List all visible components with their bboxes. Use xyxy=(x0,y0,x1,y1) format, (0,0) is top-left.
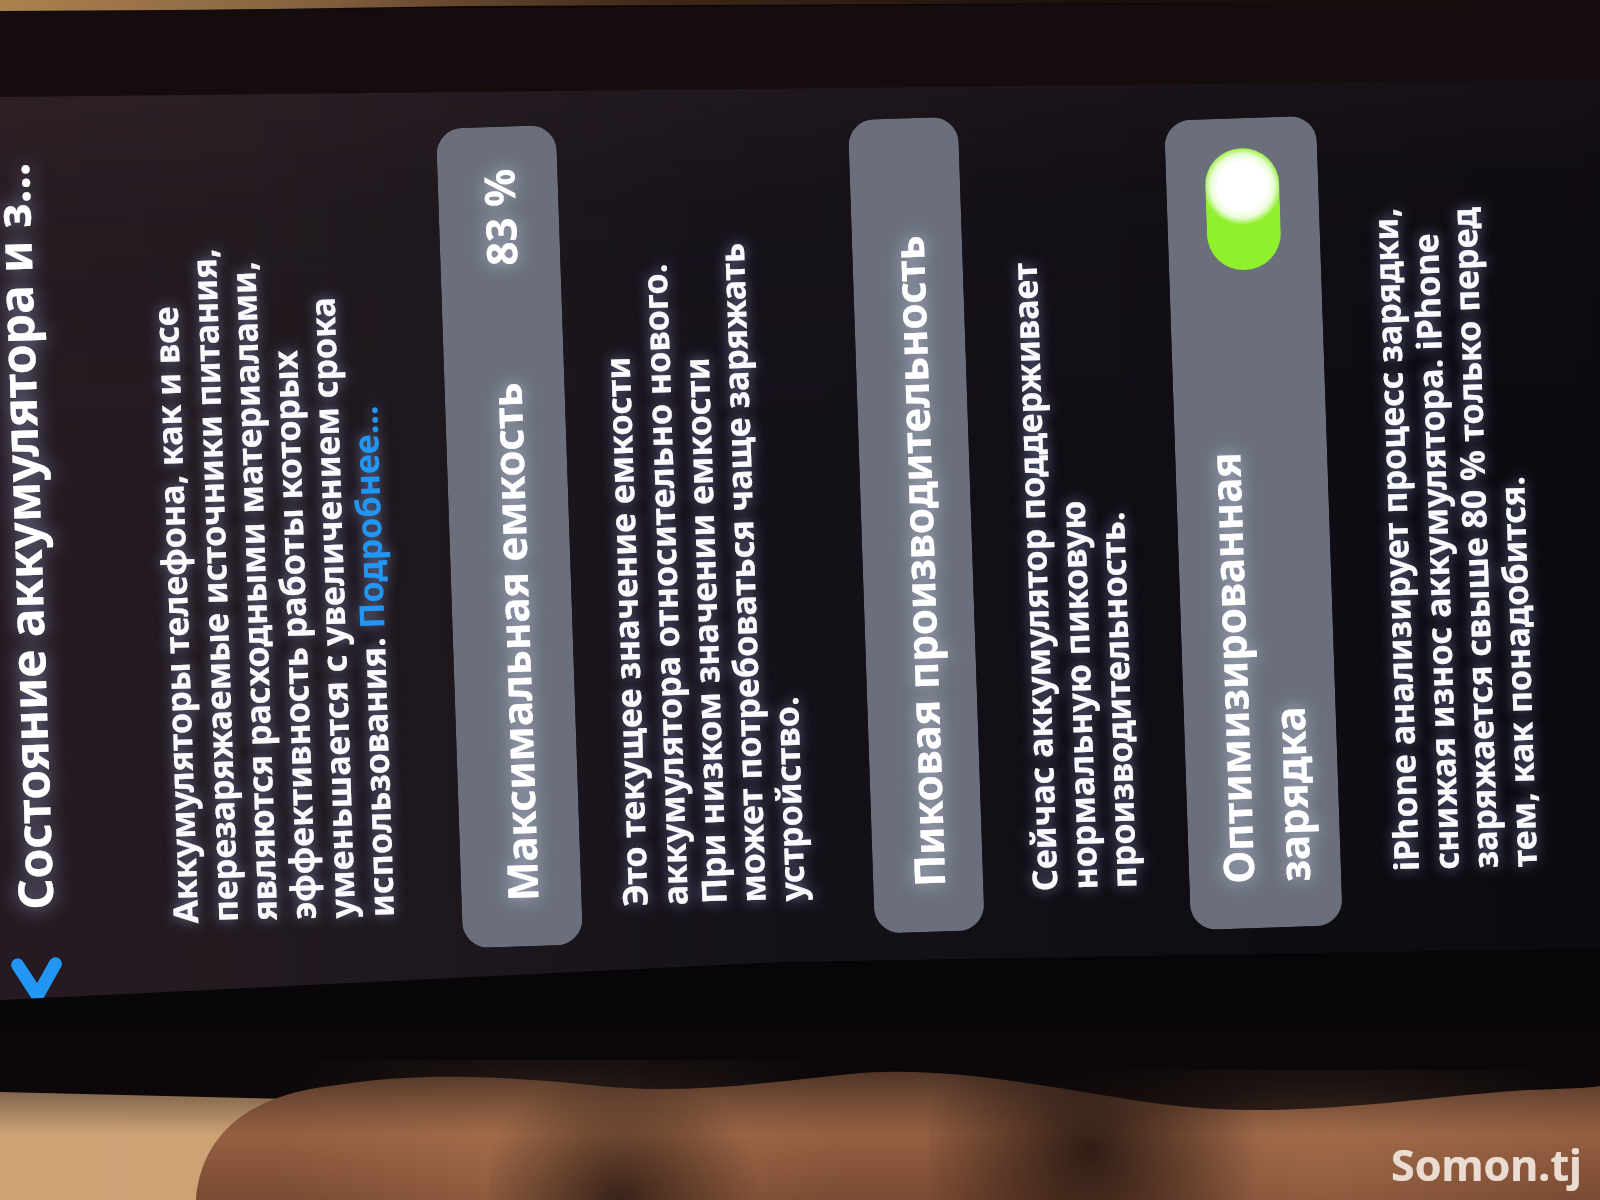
staticText: Сейчас аккумулятор поддерживает нормальн… xyxy=(995,88,1146,892)
staticText: Somon.tj xyxy=(1391,1135,1582,1194)
staticText: Оптимизированная зарядка xyxy=(1195,449,1322,885)
staticText: 83 % xyxy=(469,168,529,267)
staticText: Пиковая производительность xyxy=(879,234,957,888)
button[interactable]: Максимальная емкость xyxy=(436,125,583,948)
button[interactable]: Пиковая производительность xyxy=(848,116,985,934)
button[interactable]: Оптимизированная зарядка xyxy=(1164,116,1343,930)
staticText: Это текущее значение емкости аккумулятор… xyxy=(585,101,815,907)
button[interactable]: Back xyxy=(0,943,73,1018)
staticText: Максимальная емкость xyxy=(476,382,551,902)
staticText: iPhone анализирует процесс зарядки, сниж… xyxy=(1357,67,1547,872)
staticText: Аккумуляторы телефона, как и все перезар… xyxy=(136,117,404,924)
staticText: Состояние аккумулятора и з... xyxy=(0,162,68,911)
button[interactable]: Optimised battery charging toggle xyxy=(1204,147,1282,271)
